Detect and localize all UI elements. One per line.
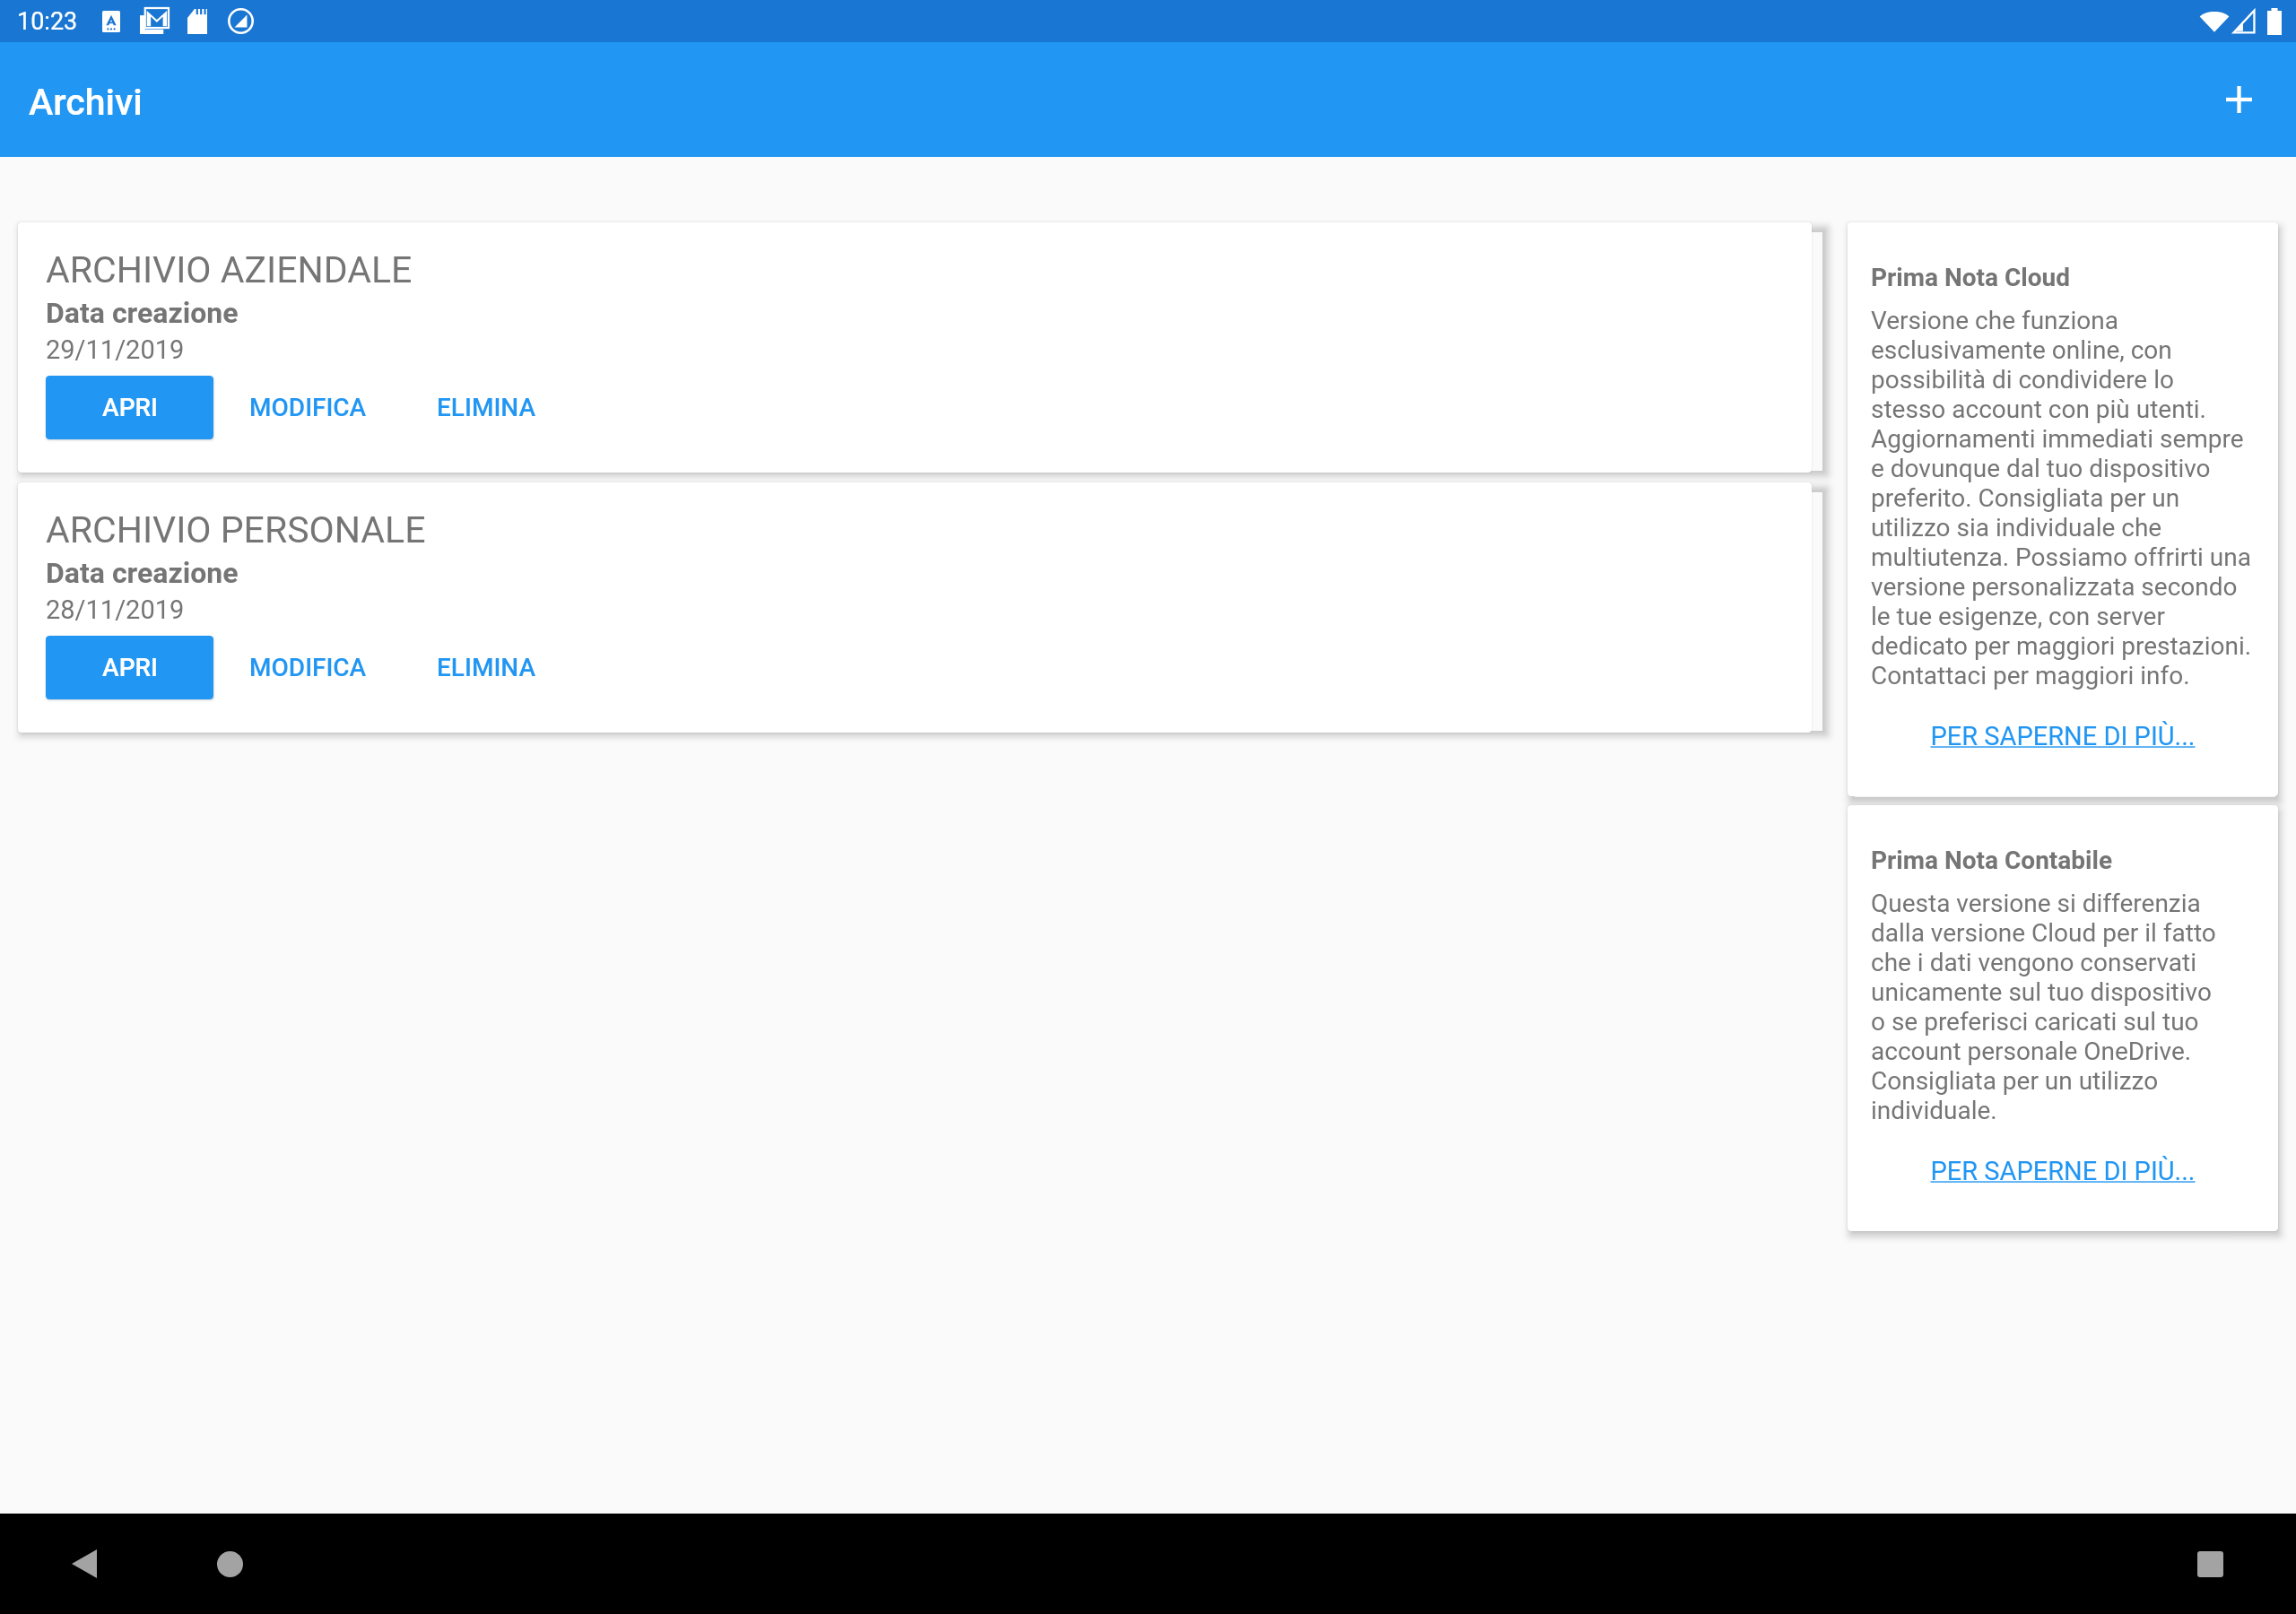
- button[interactable]: ARCHIVIO PERSONALE: [18, 482, 1812, 733]
- button[interactable]: MODIFICA: [235, 636, 381, 699]
- button[interactable]: APRI: [46, 636, 213, 699]
- staticText: Questa versione si differenzia dalla ver…: [1871, 889, 2255, 1125]
- staticText: Data creazione: [46, 296, 239, 330]
- staticText: ARCHIVIO AZIENDALE: [46, 248, 413, 291]
- staticText: Archivi: [29, 81, 143, 124]
- staticText: APRI: [102, 653, 158, 682]
- button[interactable]: Home: [197, 1532, 262, 1596]
- staticText: MODIFICA: [249, 393, 367, 422]
- button[interactable]: MODIFICA: [235, 376, 381, 439]
- button[interactable]: PER SAPERNE DI PIÙ...: [1871, 707, 2255, 766]
- staticText: PER SAPERNE DI PIÙ...: [1930, 1156, 2196, 1186]
- button[interactable]: ELIMINA: [422, 636, 551, 699]
- staticText: Versione che funziona esclusivamente onl…: [1871, 306, 2255, 690]
- staticText: APRI: [102, 393, 158, 422]
- button[interactable]: Back: [52, 1532, 117, 1596]
- staticText: ELIMINA: [437, 653, 536, 682]
- staticText: ELIMINA: [437, 393, 536, 422]
- button[interactable]: Aggiungi archivio: [2196, 56, 2282, 143]
- staticText: 10:23: [17, 7, 78, 36]
- staticText: Data creazione: [46, 556, 239, 590]
- staticText: ARCHIVIO PERSONALE: [46, 508, 426, 551]
- button[interactable]: APRI: [46, 376, 213, 439]
- staticText: 28/11/2019: [46, 594, 185, 625]
- staticText: 29/11/2019: [46, 334, 185, 365]
- button[interactable]: PER SAPERNE DI PIÙ...: [1871, 1141, 2255, 1201]
- button[interactable]: ELIMINA: [422, 376, 551, 439]
- button[interactable]: ARCHIVIO AZIENDALE: [18, 222, 1812, 473]
- staticText: Prima Nota Cloud: [1871, 263, 2071, 292]
- staticText: Prima Nota Contabile: [1871, 846, 2113, 875]
- button[interactable]: Recents: [2178, 1532, 2242, 1596]
- staticText: MODIFICA: [249, 653, 367, 682]
- staticText: PER SAPERNE DI PIÙ...: [1930, 721, 2196, 751]
